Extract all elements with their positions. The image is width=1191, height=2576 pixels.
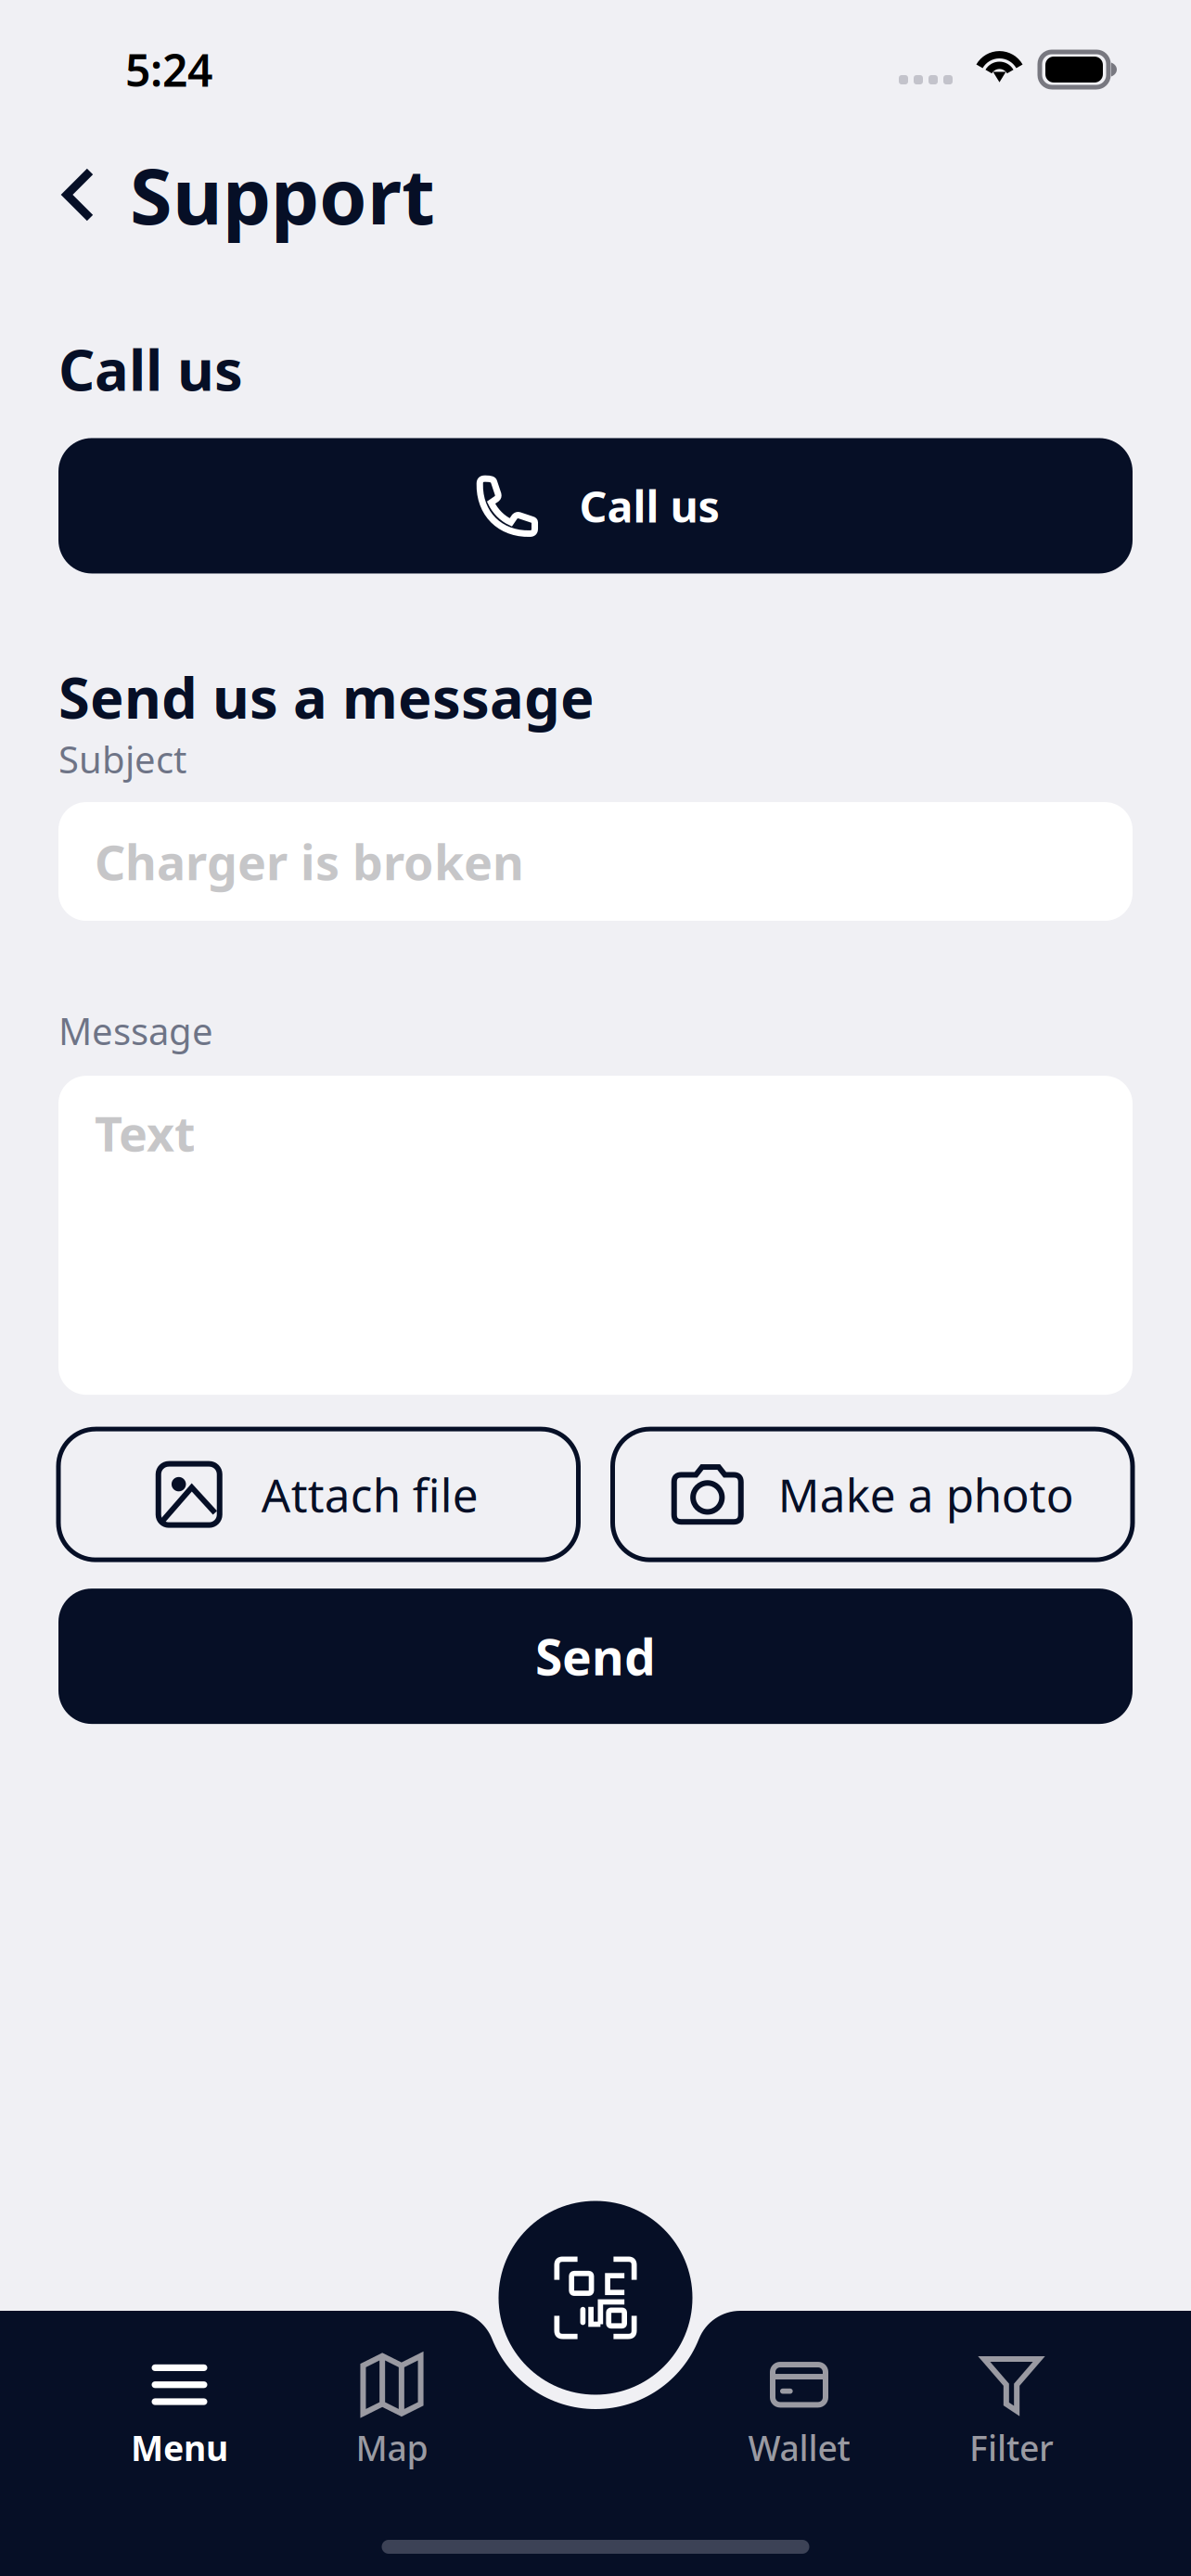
staticText: Call us [579,477,719,535]
staticText: Attach file [261,1464,478,1525]
staticText: Charger is broken [95,829,524,894]
staticText: Send us a message [58,659,595,734]
staticText: Text [95,1101,196,1165]
button[interactable]: Make a photo [613,1429,1133,1560]
staticText: Message [58,1006,213,1055]
staticText: Subject [58,734,186,784]
staticText: Make a photo [778,1464,1074,1525]
staticText: Filter [969,2425,1054,2471]
button[interactable]: Support [63,144,435,246]
staticText: Send [535,1623,656,1689]
staticText: Map [356,2425,428,2471]
staticText: 5:24 [125,40,212,99]
button[interactable]: Attach file [58,1429,578,1560]
staticText: Call us [58,331,243,407]
button[interactable]: Call us [58,438,1133,573]
button[interactable]: Send [58,1589,1133,1724]
button[interactable]: Scan QR code [499,2201,692,2395]
button[interactable]: Wallet [693,2360,905,2464]
button[interactable]: Filter [905,2360,1118,2464]
button[interactable]: Menu [73,2360,286,2464]
button[interactable]: Map [286,2360,498,2464]
staticText: Menu [131,2425,228,2471]
staticText: Wallet [748,2425,850,2471]
staticText: Support [130,144,435,246]
